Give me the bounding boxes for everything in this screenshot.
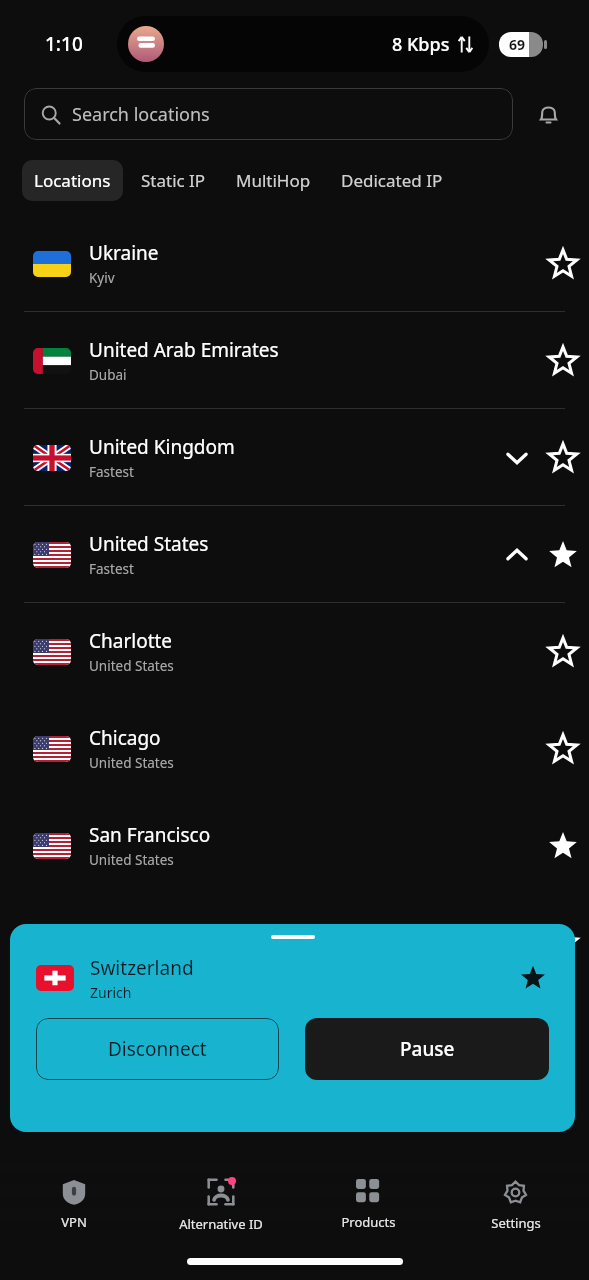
staticText: Locations xyxy=(34,169,111,192)
button[interactable]: Expand xyxy=(495,436,539,480)
staticText: United Kingdom xyxy=(89,434,235,460)
staticText: Settings xyxy=(491,1214,541,1232)
staticText: 8 Kbps xyxy=(392,32,450,57)
button[interactable]: Favorite xyxy=(539,240,587,288)
button[interactable]: Favorite xyxy=(539,725,587,773)
staticText: United States xyxy=(89,754,174,772)
staticText: Switzerland xyxy=(90,955,194,981)
button[interactable]: Alternative ID xyxy=(147,1171,294,1239)
staticText: Zurich xyxy=(90,983,132,1002)
staticText: VPN xyxy=(61,1213,87,1231)
button[interactable]: Favorite xyxy=(539,337,587,385)
staticText: San Francisco xyxy=(89,822,211,848)
button[interactable]: Favorite xyxy=(539,531,587,579)
button[interactable]: United Arab Emirates xyxy=(0,312,589,409)
staticText: Dubai xyxy=(89,366,127,384)
button[interactable]: Notifications xyxy=(527,93,569,135)
staticText: Alternative ID xyxy=(179,1215,263,1233)
staticText: Disconnect xyxy=(108,1036,207,1062)
button[interactable]: San Jose xyxy=(0,894,589,991)
button[interactable]: Favorite xyxy=(539,822,587,870)
staticText: Products xyxy=(341,1213,396,1231)
button[interactable]: Disconnect xyxy=(36,1018,279,1080)
button[interactable]: Products xyxy=(295,1173,442,1237)
staticText: Fastest xyxy=(89,463,134,481)
staticText: United States xyxy=(89,948,174,966)
button[interactable]: United Kingdom xyxy=(0,409,589,506)
button[interactable]: Charlotte xyxy=(0,603,589,700)
button[interactable]: Chicago xyxy=(0,700,589,797)
staticText: San Jose xyxy=(89,919,164,945)
staticText: 1:10 xyxy=(45,31,83,57)
button[interactable]: Settings xyxy=(442,1173,589,1238)
button[interactable]: Dedicated IP xyxy=(329,160,455,201)
button[interactable]: Collapse xyxy=(495,533,539,577)
staticText: United States xyxy=(89,657,174,675)
staticText: Kyiv xyxy=(89,269,115,287)
button[interactable]: VPN xyxy=(0,1173,147,1237)
button[interactable]: Static IP xyxy=(129,160,218,201)
button[interactable]: Locations xyxy=(22,160,123,201)
staticText: Fastest xyxy=(89,560,134,578)
staticText: Search locations xyxy=(72,102,210,127)
staticText: Ukraine xyxy=(89,240,159,266)
button[interactable]: MultiHop xyxy=(224,160,323,201)
button[interactable]: Search locations xyxy=(24,88,513,140)
button[interactable]: Pause xyxy=(305,1018,549,1080)
staticText: MultiHop xyxy=(236,169,311,192)
staticText: United States xyxy=(89,531,209,557)
staticText: United States xyxy=(89,851,174,869)
button[interactable]: Ukraine xyxy=(0,215,589,312)
staticText: United Arab Emirates xyxy=(89,337,279,363)
button[interactable]: United States xyxy=(0,506,589,603)
staticText: Dedicated IP xyxy=(341,169,443,192)
button[interactable]: Favorite xyxy=(539,919,587,967)
staticText: Charlotte xyxy=(89,628,173,654)
button[interactable]: San Francisco xyxy=(0,797,589,894)
staticText: Static IP xyxy=(141,169,206,192)
staticText: Pause xyxy=(400,1036,455,1062)
button[interactable]: Favorite xyxy=(509,954,557,1002)
staticText: 69 xyxy=(509,35,526,54)
button[interactable]: Favorite xyxy=(539,628,587,676)
button[interactable]: Favorite xyxy=(539,434,587,482)
staticText: Chicago xyxy=(89,725,161,751)
